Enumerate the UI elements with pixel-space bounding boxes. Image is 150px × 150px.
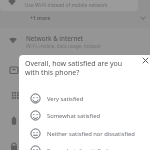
staticText: Somewhat dissatisfied (47, 147, 108, 150)
button[interactable]: Settings item (0, 60, 150, 80)
button[interactable]: Network & internet (0, 30, 150, 50)
button[interactable]: Use Wi-Fi instead of mobile network (0, 0, 150, 11)
button[interactable] (0, 0, 138, 11)
button[interactable]: Somewhat dissatisfied (19, 142, 150, 150)
staticText: +1 more (30, 15, 51, 22)
staticText: Overall, how satisfied are you with this… (25, 58, 135, 77)
staticText: Wi-Fi, mobile, data usage, hotspot (26, 43, 101, 49)
button[interactable]: +1 more (0, 12, 150, 24)
staticText: Network & internet (26, 34, 84, 42)
staticText: Neither satisfied nor dissatisfied (47, 130, 135, 138)
button[interactable]: Settings item (0, 85, 150, 105)
button[interactable]: Very satisfied (19, 90, 150, 107)
button[interactable]: Settings item (0, 111, 150, 131)
button[interactable]: Settings item (0, 137, 150, 150)
button[interactable]: Close (138, 55, 150, 67)
button[interactable]: Somewhat satisfied (19, 107, 150, 124)
staticText: Somewhat satisfied (47, 112, 100, 120)
staticText: Use Wi-Fi instead of mobile network (25, 2, 108, 9)
staticText: Very satisfied (47, 95, 84, 103)
button[interactable]: Neither satisfied nor dissatisfied (19, 125, 150, 142)
